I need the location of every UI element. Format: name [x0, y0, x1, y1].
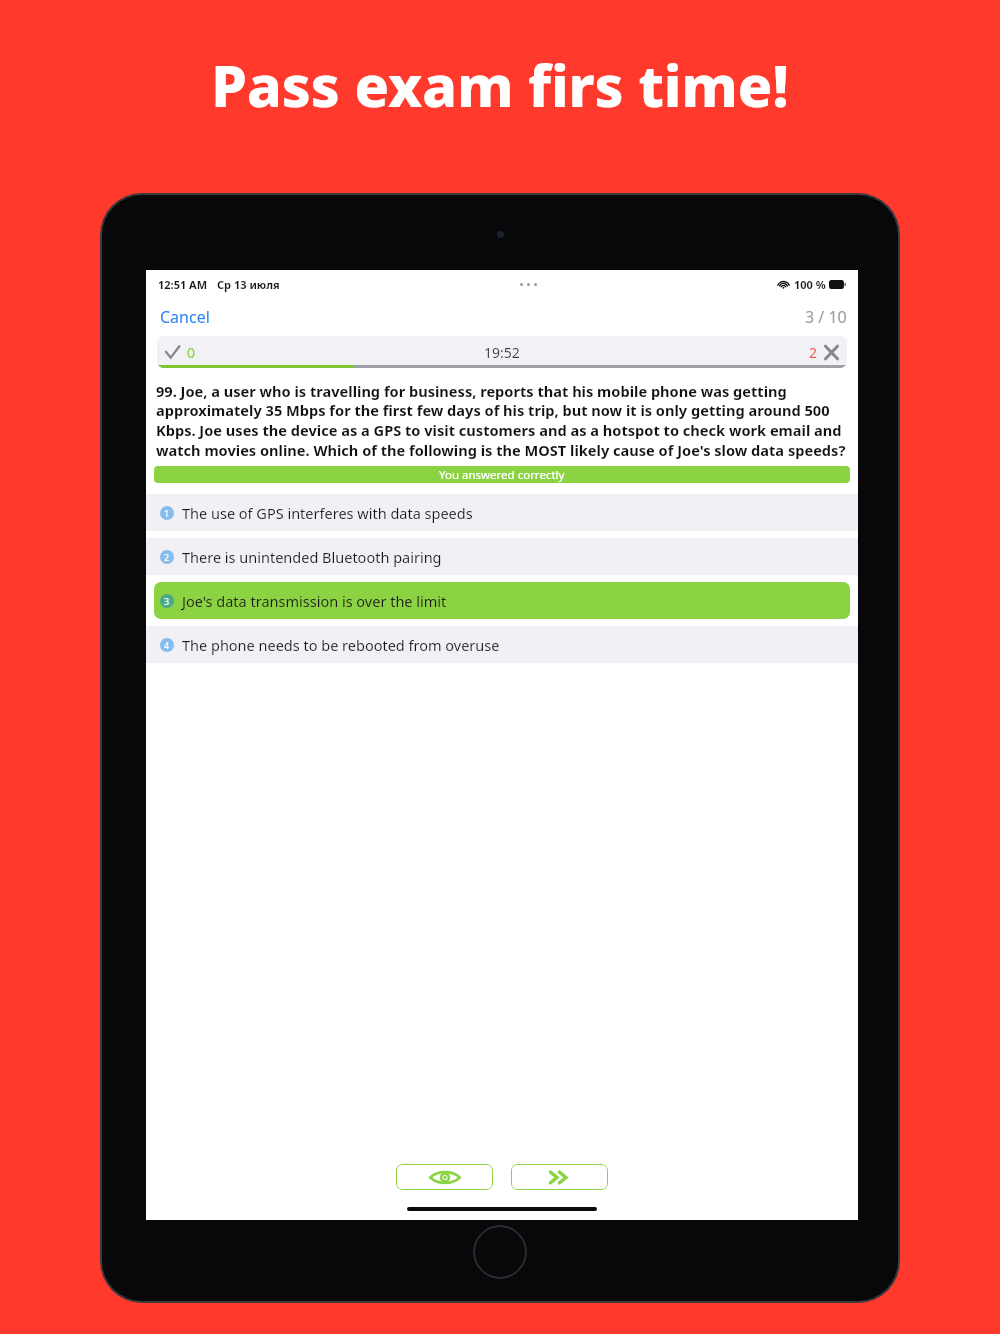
staticText: 100 %	[794, 277, 826, 292]
button[interactable]: Show answer	[396, 1164, 493, 1190]
button[interactable]: 3	[154, 582, 850, 619]
staticText: The phone needs to be rebooted from over…	[182, 635, 500, 655]
staticText: 19:52	[484, 343, 520, 362]
staticText: 12:51 AM	[158, 277, 208, 292]
button[interactable]: 4	[146, 626, 858, 663]
staticText: 0	[187, 343, 196, 362]
button[interactable]: 1	[146, 494, 858, 531]
button[interactable]: Cancel	[157, 302, 213, 332]
staticText: 2	[809, 343, 818, 362]
staticText: There is unintended Bluetooth pairing	[182, 547, 442, 567]
staticText: Cancel	[160, 306, 210, 328]
staticText: 1	[164, 507, 170, 519]
staticText: Pass exam firs time!	[211, 46, 789, 124]
staticText: Ср 13 июля	[217, 277, 280, 292]
button[interactable]: 2	[146, 538, 858, 575]
staticText: Joe's data transmission is over the limi…	[182, 591, 447, 611]
staticText: 99. Joe, a user who is travelling for bu…	[156, 381, 848, 461]
staticText: The use of GPS interferes with data spee…	[182, 503, 473, 523]
staticText: 3 / 10	[805, 306, 847, 328]
button[interactable]: Next question	[511, 1164, 608, 1190]
staticText: 4	[164, 639, 170, 651]
staticText: 3	[164, 595, 170, 607]
staticText: You answered correctly	[439, 467, 565, 483]
staticText: 2	[164, 551, 170, 563]
